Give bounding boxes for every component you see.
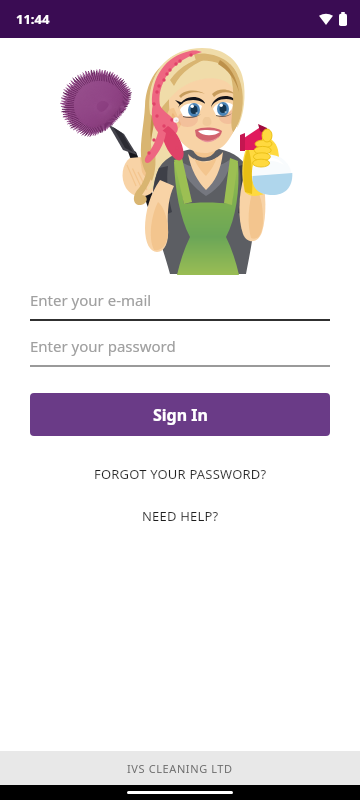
other: Battery [339, 12, 347, 26]
button[interactable]: NEED HELP? [0, 503, 360, 529]
button[interactable]: Enter your e-mail [30, 288, 330, 321]
staticText: Sign In [153, 404, 208, 426]
button[interactable]: Enter your password [30, 334, 330, 367]
staticText: Enter your e-mail [30, 290, 152, 310]
other: Wi-Fi [319, 13, 333, 25]
staticText: NEED HELP? [142, 507, 219, 525]
staticText: 11:44 [16, 10, 50, 28]
button[interactable]: FORGOT YOUR PASSWORD? [0, 461, 360, 487]
staticText: IVS CLEANING LTD [127, 761, 233, 776]
staticText: Enter your password [30, 336, 176, 356]
button[interactable]: Sign In [30, 393, 330, 436]
staticText: FORGOT YOUR PASSWORD? [94, 465, 267, 483]
